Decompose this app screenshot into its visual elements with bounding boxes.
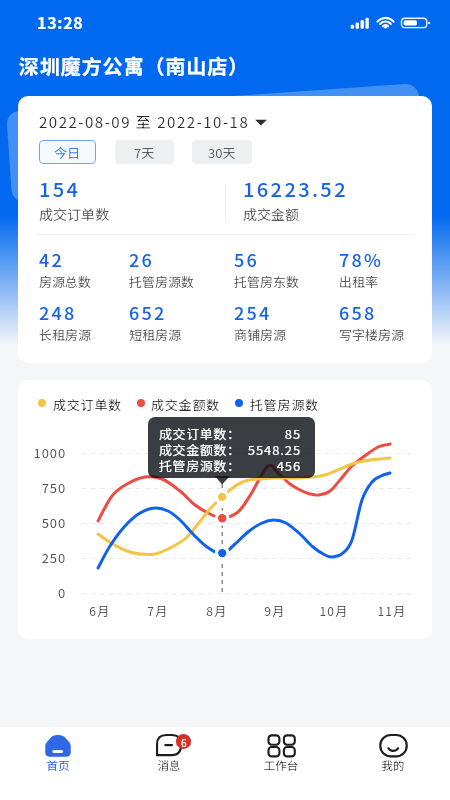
staticText: 我的 (353, 757, 433, 774)
staticText: 7月 (128, 602, 188, 619)
button[interactable]: 2022-08-09 至 2022-10-18 (39, 111, 264, 133)
button[interactable]: 工作台 (241, 727, 321, 800)
button[interactable]: 42 (39, 246, 65, 272)
staticText: 500 (18, 513, 66, 532)
staticText: 成交订单数 (53, 395, 123, 414)
staticText: 短租房源 (129, 325, 182, 344)
staticText: 托管房东数 (234, 272, 300, 291)
staticText: 写字楼房源 (339, 325, 405, 344)
staticText: 0 (18, 583, 66, 602)
button[interactable]: 今日 (39, 140, 96, 164)
button[interactable]: 26 (129, 246, 155, 272)
staticText: 成交订单数 (39, 204, 109, 224)
button[interactable]: 首页 (18, 727, 98, 800)
button[interactable]: 78% (339, 246, 384, 272)
staticText: 456 (148, 456, 301, 475)
staticText: 托管房源数： (159, 456, 241, 475)
staticText: 85 (148, 424, 301, 443)
staticText: 30天 (208, 143, 236, 162)
staticText: 5548.25 (148, 440, 301, 459)
staticText: 工作台 (241, 757, 321, 774)
staticText: 750 (18, 478, 66, 497)
staticText: 托管房源数 (129, 272, 195, 291)
staticText: 成交金额 (243, 204, 299, 224)
staticText: 商铺房源 (234, 325, 287, 344)
staticText: 首页 (18, 757, 98, 774)
other: Status icons (348, 13, 434, 29)
staticText: 房源总数 (39, 272, 92, 291)
staticText: 长租房源 (39, 325, 92, 344)
button[interactable]: 652 (129, 299, 167, 325)
staticText: 11月 (362, 602, 422, 619)
button[interactable]: 我的 (353, 727, 433, 800)
button[interactable]: 56 (234, 246, 260, 272)
staticText: 成交金额数： (159, 440, 241, 459)
staticText: 13:28 (37, 10, 84, 33)
staticText: 7天 (134, 143, 155, 162)
staticText: 成交金额数 (151, 395, 221, 414)
staticText: 154 (39, 174, 81, 203)
button[interactable]: 248 (39, 299, 77, 325)
staticText: 出租率 (339, 272, 379, 291)
staticText: 2022-08-09 至 2022-10-18 (39, 111, 250, 133)
staticText: 250 (18, 548, 66, 567)
button[interactable]: 30天 (192, 140, 252, 164)
button[interactable]: 658 (339, 299, 377, 325)
staticText: 托管房源数 (250, 395, 320, 414)
button[interactable]: 6 (129, 727, 209, 800)
staticText: 6月 (70, 602, 130, 619)
staticText: 成交订单数： (159, 424, 241, 443)
staticText: 深圳魔方公寓（南山店） (19, 51, 249, 80)
button[interactable]: 7天 (115, 140, 174, 164)
staticText: 6 (181, 735, 187, 749)
staticText: 10月 (304, 602, 364, 619)
staticText: 16223.52 (243, 174, 348, 203)
staticText: 8月 (187, 602, 247, 619)
staticText: 消息 (129, 757, 209, 774)
staticText: 1000 (18, 443, 66, 462)
button[interactable]: 254 (234, 299, 272, 325)
staticText: 9月 (245, 602, 305, 619)
staticText: 今日 (54, 143, 81, 162)
